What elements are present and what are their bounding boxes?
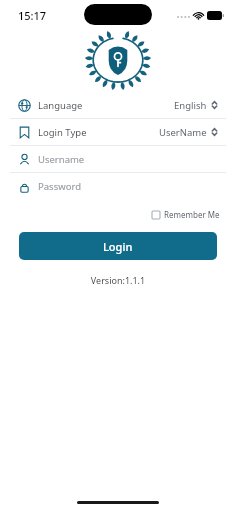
staticText: UserName xyxy=(159,126,207,139)
staticText: 15:17 xyxy=(18,8,47,23)
staticText: Remember Me xyxy=(164,209,220,220)
button[interactable]: Login Type xyxy=(10,119,226,145)
staticText: Username xyxy=(38,153,85,166)
staticText: Login xyxy=(103,239,133,254)
button[interactable]: Language xyxy=(10,92,226,118)
button[interactable]: Username xyxy=(10,146,226,172)
staticText: English xyxy=(174,99,207,112)
staticText: Version:1.1.1 xyxy=(0,274,236,286)
staticText: Login Type xyxy=(38,126,87,139)
button[interactable]: Remember Me xyxy=(148,205,224,224)
button[interactable]: Login xyxy=(19,232,217,260)
button[interactable]: Password xyxy=(10,173,226,199)
staticText: Language xyxy=(38,99,83,112)
staticText: Password xyxy=(38,180,81,193)
